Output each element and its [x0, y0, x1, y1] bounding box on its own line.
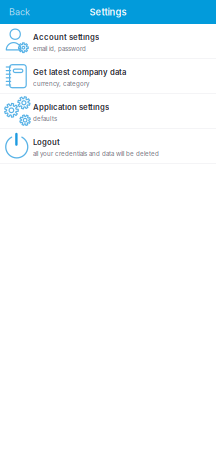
button[interactable]: Back: [0, 1, 38, 22]
staticText: Account settings: [33, 32, 99, 42]
staticText: all your credentials and data will be de…: [33, 150, 159, 157]
button[interactable]: Account settings: [0, 24, 216, 59]
staticText: Logout: [33, 137, 60, 147]
button[interactable]: Get latest company data: [0, 59, 216, 94]
staticText: Back: [9, 6, 30, 17]
staticText: Get latest company data: [33, 67, 126, 77]
staticText: Settings: [89, 6, 126, 18]
staticText: defaults: [33, 115, 57, 122]
staticText: email id, password: [33, 45, 86, 52]
button[interactable]: Application settings: [0, 94, 216, 129]
staticText: Application settings: [33, 102, 109, 112]
staticText: currency, category: [33, 80, 89, 87]
button[interactable]: Logout: [0, 129, 216, 164]
